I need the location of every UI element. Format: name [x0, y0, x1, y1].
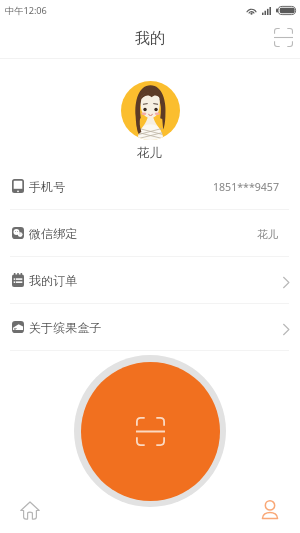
button[interactable]: Scan code — [74, 355, 226, 507]
button[interactable]: Home — [10, 490, 50, 530]
button[interactable]: 手机号 — [0, 163, 300, 210]
button[interactable]: 我的订单 — [0, 257, 300, 304]
staticText: 花儿 — [257, 228, 279, 241]
staticText: 关于缤果盒子 — [29, 320, 102, 335]
staticText: 花儿 — [137, 145, 163, 161]
staticText: 中午12:06 — [5, 4, 47, 17]
button[interactable]: 关于缤果盒子 — [0, 304, 300, 351]
staticText: 1851***9457 — [213, 180, 279, 194]
button[interactable]: Scan QR code — [270, 24, 296, 50]
staticText: 我的订单 — [29, 273, 78, 288]
button[interactable]: 微信绑定 — [0, 210, 300, 257]
button[interactable]: Avatar — [121, 81, 180, 140]
staticText: 手机号 — [29, 179, 66, 194]
staticText: 微信绑定 — [29, 226, 78, 241]
button[interactable]: Profile — [250, 490, 290, 530]
staticText: 我的 — [135, 29, 165, 48]
